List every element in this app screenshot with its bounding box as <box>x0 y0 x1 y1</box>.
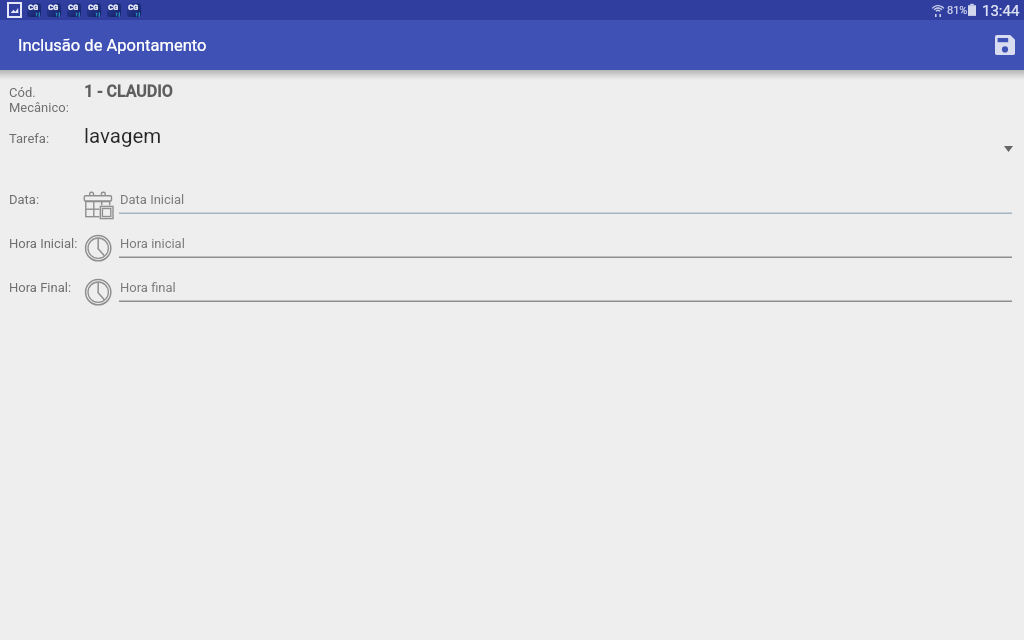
staticText: Tarefa: <box>9 131 50 146</box>
staticText: Hora Final: <box>9 280 72 295</box>
staticText: lavagem <box>84 124 162 148</box>
button[interactable]: Hora Inicial: <box>0 233 1024 267</box>
button[interactable]: Abrir lista de tarefas <box>992 133 1024 165</box>
staticText: CG <box>108 3 119 12</box>
staticText: Data: <box>9 192 40 207</box>
button[interactable]: Hora Final: <box>0 277 1024 311</box>
button[interactable]: lavagem <box>84 118 1012 158</box>
staticText: CG <box>28 3 39 12</box>
staticText: 13:44 <box>982 2 1020 20</box>
button[interactable]: Salvar <box>983 23 1024 67</box>
staticText: Hora inicial <box>120 236 185 251</box>
staticText: Hora final <box>120 280 176 295</box>
button[interactable]: Data: <box>0 189 1024 223</box>
staticText: 81% <box>947 4 968 17</box>
staticText: Inclusão de Apontamento <box>18 36 207 55</box>
staticText: Cód. <box>9 85 36 100</box>
staticText: CG <box>88 3 99 12</box>
staticText: Hora Inicial: <box>9 236 78 251</box>
staticText: CG <box>128 3 139 12</box>
staticText: CG <box>48 3 59 12</box>
staticText: 1 - CLAUDIO <box>84 82 173 101</box>
staticText: Mecânico: <box>9 100 69 115</box>
staticText: Data Inicial <box>120 192 185 207</box>
staticText: CG <box>68 3 79 12</box>
